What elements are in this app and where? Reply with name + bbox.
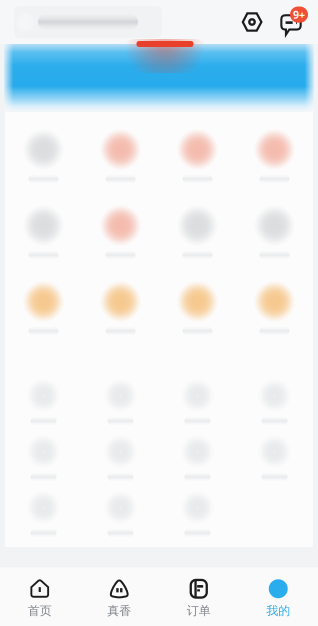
button[interactable]: Settings (237, 7, 267, 37)
button[interactable] (5, 280, 82, 335)
button[interactable] (82, 204, 159, 259)
button[interactable] (236, 128, 313, 183)
button[interactable] (82, 280, 159, 335)
button[interactable] (159, 490, 236, 537)
button[interactable] (82, 378, 159, 425)
button[interactable] (236, 280, 313, 335)
button[interactable] (159, 280, 236, 335)
button[interactable]: 订单 (159, 567, 238, 626)
button[interactable] (82, 434, 159, 481)
button[interactable] (5, 128, 82, 183)
staticText: 我的 (266, 603, 290, 618)
button[interactable] (82, 128, 159, 183)
staticText: 真香 (107, 603, 131, 618)
button[interactable] (236, 204, 313, 259)
staticText: 首页 (28, 603, 52, 618)
button[interactable]: Messages (277, 6, 309, 38)
staticText: 9+ (293, 7, 305, 22)
button[interactable] (5, 434, 82, 481)
button[interactable] (5, 378, 82, 425)
button[interactable] (82, 490, 159, 537)
button[interactable]: Search (14, 4, 162, 40)
button[interactable] (159, 204, 236, 259)
button[interactable] (236, 434, 313, 481)
button[interactable] (159, 434, 236, 481)
staticText: 订单 (187, 603, 211, 618)
button[interactable] (159, 128, 236, 183)
button[interactable]: 真香 (79, 567, 159, 626)
button[interactable] (5, 490, 82, 537)
button[interactable] (159, 378, 236, 425)
button[interactable] (5, 204, 82, 259)
button[interactable]: 首页 (0, 567, 79, 626)
button[interactable] (236, 378, 313, 425)
button[interactable]: 我的 (238, 567, 318, 626)
